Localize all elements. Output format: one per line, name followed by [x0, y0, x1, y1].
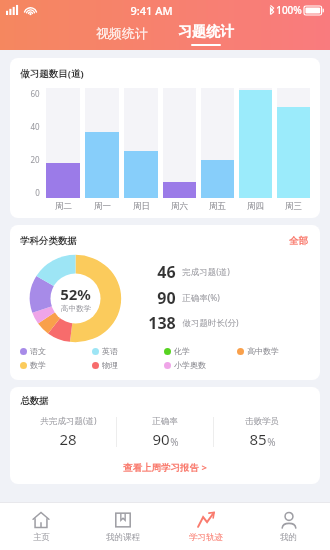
- staticText: 共完成习题(道): [40, 415, 97, 427]
- staticText: 周三: [285, 201, 302, 212]
- staticText: 数学: [30, 360, 46, 370]
- staticText: 学科分类数据: [20, 235, 77, 247]
- staticText: 正确率(%): [182, 292, 220, 304]
- staticText: 查看上周学习报告 >: [123, 461, 207, 474]
- staticText: 周五: [209, 201, 226, 212]
- staticText: 60: [30, 88, 40, 99]
- staticText: 视频统计: [96, 25, 148, 41]
- staticText: 我的课程: [106, 532, 140, 543]
- staticText: 90: [157, 287, 176, 309]
- staticText: 语文: [30, 346, 46, 356]
- staticText: 做习题时长(分): [182, 317, 239, 329]
- staticText: 周六: [171, 201, 188, 212]
- staticText: %: [170, 435, 179, 449]
- staticText: 小学奥数: [174, 360, 206, 370]
- staticText: 我的: [280, 532, 297, 543]
- staticText: 高中数学: [247, 346, 279, 356]
- staticText: 习题统计: [178, 23, 234, 41]
- staticText: 20: [30, 154, 40, 165]
- button[interactable]: 我的课程: [82, 503, 164, 550]
- button[interactable]: 我的: [247, 503, 330, 550]
- staticText: 28: [59, 429, 77, 449]
- staticText: 138: [148, 312, 176, 334]
- button[interactable]: 主页: [0, 503, 82, 550]
- staticText: 完成习题(道): [182, 266, 230, 278]
- staticText: 总数据: [20, 395, 49, 407]
- staticText: 周二: [55, 201, 72, 212]
- staticText: 正确率: [152, 416, 178, 427]
- staticText: 击败学员: [245, 416, 279, 427]
- staticText: 周四: [247, 201, 264, 212]
- staticText: 学习轨迹: [189, 532, 223, 543]
- staticText: 高中数学: [61, 304, 91, 313]
- staticText: 90: [152, 429, 170, 449]
- staticText: 做习题数目(道): [20, 67, 84, 80]
- staticText: 9:41 AM: [130, 3, 173, 18]
- staticText: 化学: [174, 346, 190, 356]
- staticText: 周日: [133, 201, 150, 212]
- staticText: 46: [157, 261, 176, 283]
- staticText: 物理: [102, 360, 118, 370]
- staticText: 40: [30, 121, 40, 132]
- staticText: 全部: [289, 235, 308, 247]
- staticText: 100%: [276, 3, 302, 17]
- staticText: 52%: [60, 284, 91, 304]
- staticText: 周一: [94, 201, 111, 212]
- staticText: 主页: [33, 532, 50, 543]
- button[interactable]: 学习轨迹: [164, 503, 247, 550]
- button[interactable]: 视频统计: [92, 25, 152, 50]
- staticText: 0: [35, 187, 40, 198]
- staticText: 85: [249, 429, 267, 449]
- staticText: %: [267, 435, 276, 449]
- button[interactable]: 查看上周学习报告 >: [20, 461, 310, 474]
- button[interactable]: 全部: [287, 233, 310, 249]
- button[interactable]: 习题统计: [174, 23, 238, 50]
- staticText: 英语: [102, 346, 118, 356]
